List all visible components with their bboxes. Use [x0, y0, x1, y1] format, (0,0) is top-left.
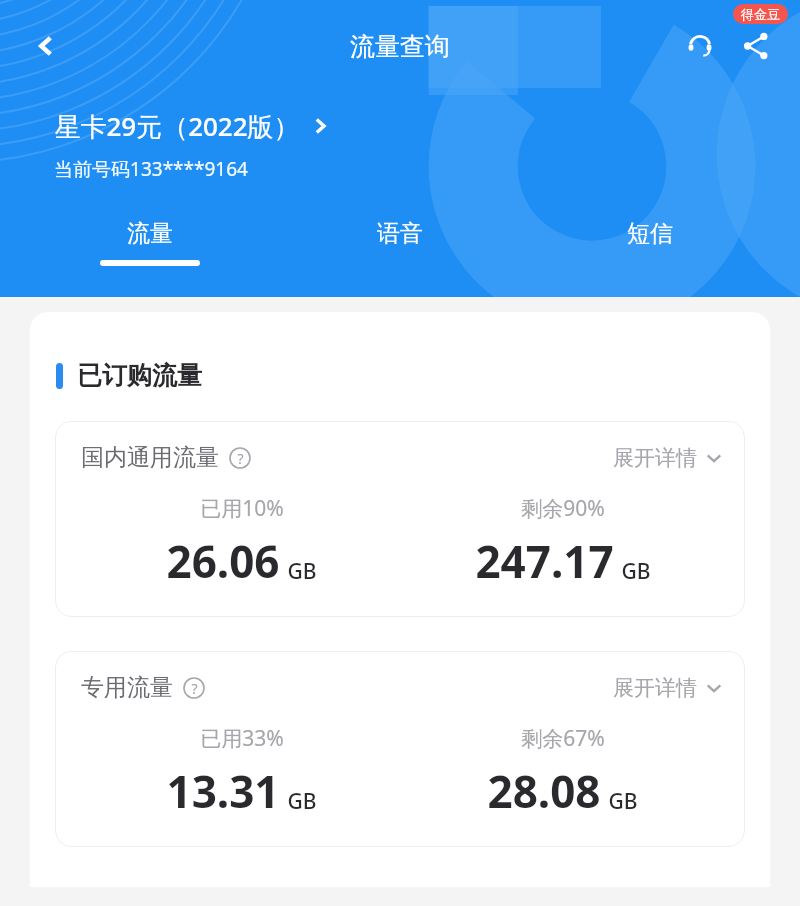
staticText: GB [608, 787, 638, 816]
staticText: 13.31 [166, 761, 280, 821]
button[interactable]: 得金豆 [733, 4, 788, 24]
staticText: 已用33% [200, 724, 284, 753]
staticText: GB [287, 557, 317, 586]
button[interactable]: Share [728, 18, 784, 74]
staticText: 已订购流量 [77, 360, 202, 391]
staticText: ? [237, 449, 244, 468]
button[interactable]: 国内通用流量 [55, 421, 745, 617]
staticText: 语音 [377, 219, 423, 248]
button[interactable]: 短信 [550, 213, 750, 297]
button[interactable]: Help [227, 445, 253, 471]
staticText: 剩余90% [521, 494, 605, 523]
button[interactable]: 专用流量 [55, 651, 745, 847]
staticText: ? [191, 679, 198, 698]
button[interactable]: 星卡29元（2022版） [54, 108, 330, 144]
button[interactable]: 语音 [300, 213, 500, 297]
staticText: 28.08 [487, 761, 601, 821]
button[interactable]: 流量 [50, 213, 250, 297]
staticText: 短信 [627, 219, 673, 248]
staticText: 国内通用流量 [81, 443, 219, 472]
staticText: 流量查询 [350, 31, 450, 62]
button[interactable]: 展开详情 [613, 675, 723, 701]
staticText: 流量 [127, 219, 173, 248]
staticText: 星卡29元（2022版） [54, 108, 300, 144]
staticText: 247.17 [475, 531, 614, 591]
staticText: 展开详情 [613, 445, 697, 471]
button[interactable]: Help [181, 675, 207, 701]
staticText: 得金豆 [741, 6, 780, 22]
button[interactable]: Back [18, 18, 74, 74]
staticText: GB [621, 557, 651, 586]
staticText: 剩余67% [521, 724, 605, 753]
staticText: 26.06 [166, 531, 280, 591]
button[interactable]: Customer service [672, 18, 728, 74]
staticText: GB [287, 787, 317, 816]
staticText: 专用流量 [81, 673, 173, 702]
staticText: 已用10% [200, 494, 284, 523]
staticText: 当前号码133****9164 [54, 156, 248, 182]
staticText: 展开详情 [613, 675, 697, 701]
button[interactable]: 展开详情 [613, 445, 723, 471]
